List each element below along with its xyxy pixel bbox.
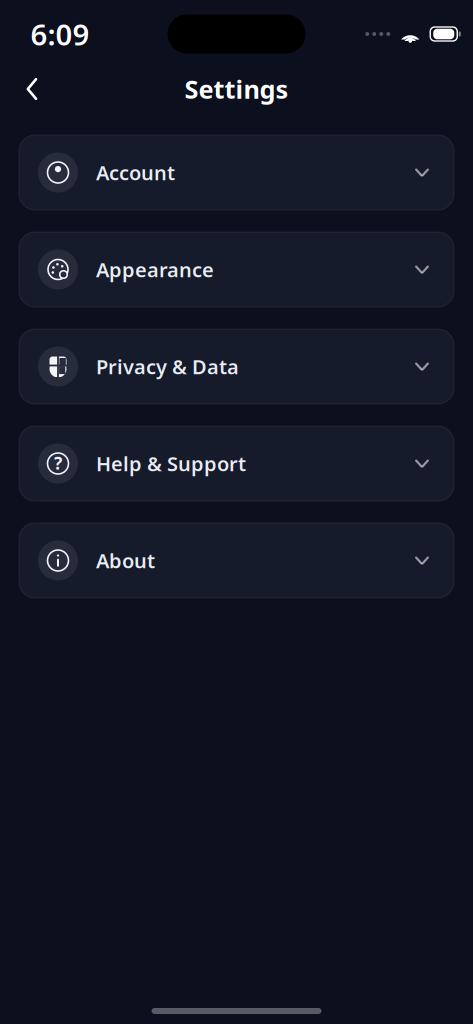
staticText: About <box>96 547 155 574</box>
button[interactable]: Appearance <box>19 232 454 307</box>
staticText: Help & Support <box>96 450 246 477</box>
staticText: Privacy & Data <box>96 353 239 380</box>
button[interactable]: Back <box>10 67 54 111</box>
staticText: Settings <box>184 72 288 106</box>
button[interactable]: About <box>19 523 454 598</box>
button[interactable]: ? <box>19 426 454 501</box>
staticText: Account <box>96 159 175 186</box>
staticText: ? <box>54 451 62 474</box>
button[interactable]: Account <box>19 135 454 210</box>
staticText: Appearance <box>96 256 214 283</box>
staticText: 6:09 <box>30 14 89 53</box>
button[interactable]: Privacy & Data <box>19 329 454 404</box>
